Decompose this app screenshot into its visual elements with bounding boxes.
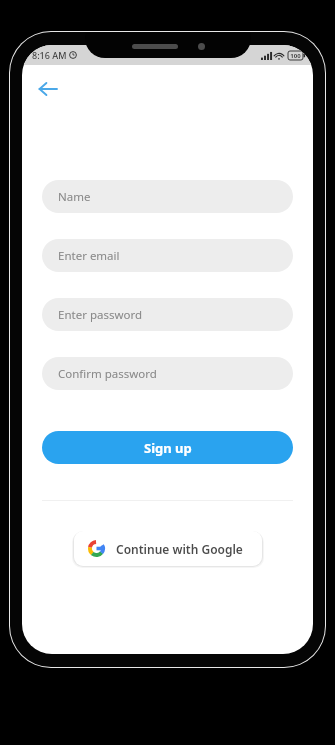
- button[interactable]: Back: [30, 71, 66, 107]
- staticText: Continue with Google: [116, 541, 243, 557]
- staticText: 100: [290, 52, 301, 60]
- button[interactable]: Continue with Google: [74, 531, 262, 566]
- button[interactable]: Confirm password: [42, 357, 293, 390]
- staticText: Sign up: [144, 439, 192, 457]
- staticText: 8:16 AM: [32, 49, 67, 61]
- staticText: Confirm password: [58, 366, 157, 382]
- button[interactable]: Enter password: [42, 298, 293, 331]
- staticText: Name: [58, 189, 91, 205]
- button[interactable]: Sign up: [42, 431, 293, 464]
- staticText: Enter email: [58, 248, 120, 264]
- button[interactable]: Enter email: [42, 239, 293, 272]
- staticText: Enter password: [58, 307, 143, 323]
- button[interactable]: Name: [42, 180, 293, 213]
